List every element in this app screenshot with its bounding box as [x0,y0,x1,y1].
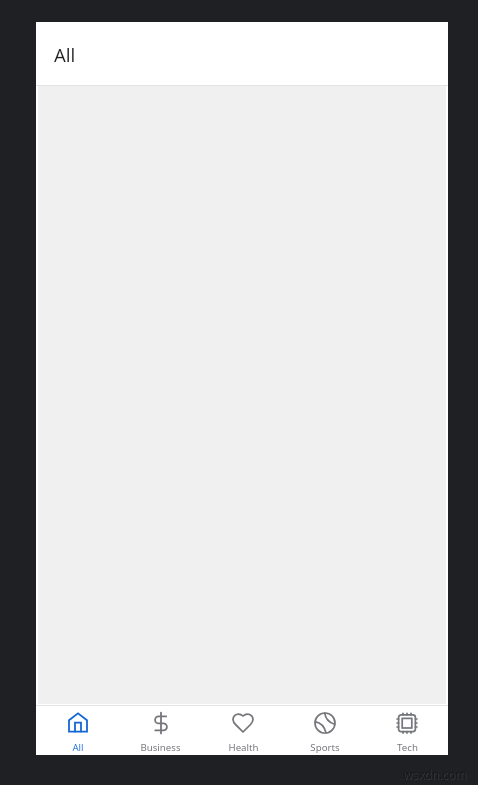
staticText: wsxdn.com [404,767,468,783]
staticText: Business [140,741,181,754]
staticText: Health [228,741,259,754]
staticText: Tech [397,741,418,754]
button[interactable]: All [36,706,119,755]
button[interactable]: Sports [284,706,366,755]
button[interactable]: Tech [366,706,448,755]
button[interactable]: Business [119,706,202,755]
staticText: All [54,42,76,67]
staticText: Sports [310,741,340,754]
staticText: wsxdn.com [403,766,467,782]
staticText: All [72,741,84,754]
button[interactable]: Health [202,706,284,755]
